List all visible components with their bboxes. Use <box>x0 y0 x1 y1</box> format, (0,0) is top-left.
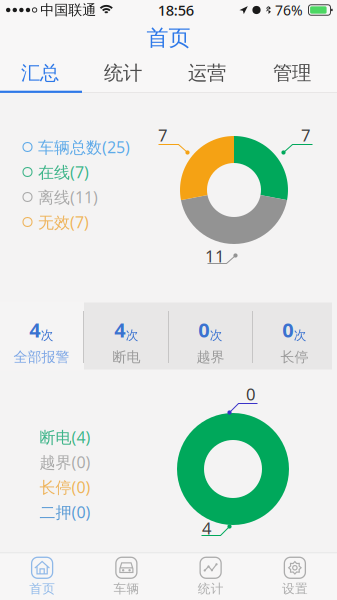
staticText: 次 <box>294 327 307 343</box>
staticText: 4 <box>202 517 212 539</box>
staticText: 0 <box>282 316 293 343</box>
button[interactable]: 4 <box>85 307 168 374</box>
staticText: 次 <box>41 327 54 343</box>
staticText: 全部报警 <box>13 348 69 366</box>
button[interactable]: 车辆 <box>84 554 168 600</box>
staticText: 11 <box>205 245 225 267</box>
staticText: 统计 <box>104 61 142 85</box>
staticText: 离线(11) <box>38 186 98 208</box>
staticText: 7 <box>158 124 168 146</box>
staticText: 0 <box>198 316 209 343</box>
staticText: 次 <box>210 327 223 343</box>
staticText: 统计 <box>198 581 224 597</box>
staticText: 设置 <box>282 581 308 597</box>
button[interactable]: 0 <box>253 307 336 374</box>
staticText: 二押(0) <box>39 501 90 523</box>
staticText: 越界 <box>196 348 224 366</box>
staticText: 车辆总数(25) <box>38 136 130 158</box>
staticText: 中国联通 <box>40 1 96 19</box>
staticText: 长停(0) <box>39 476 90 498</box>
staticText: 无效(7) <box>38 211 89 233</box>
staticText: 越界(0) <box>39 451 90 473</box>
button[interactable]: 统计 <box>168 554 253 600</box>
staticText: 4 <box>114 316 125 343</box>
staticText: 管理 <box>273 61 311 85</box>
staticText: 首页 <box>29 581 55 597</box>
button[interactable]: 设置 <box>253 554 337 600</box>
staticText: 7 <box>301 124 311 146</box>
staticText: 运营 <box>188 61 226 85</box>
staticText: 首页 <box>146 24 190 52</box>
button[interactable]: 汇总 <box>0 53 82 93</box>
staticText: 断电 <box>112 348 140 366</box>
button[interactable]: 管理 <box>250 53 334 93</box>
staticText: 4 <box>29 316 40 343</box>
staticText: 次 <box>126 327 139 343</box>
button[interactable]: 首页 <box>0 554 84 600</box>
staticText: 断电(4) <box>39 426 90 448</box>
staticText: 长停 <box>280 348 308 366</box>
staticText: 车辆 <box>113 581 139 597</box>
button[interactable]: 统计 <box>81 53 165 93</box>
staticText: 76% <box>275 0 303 20</box>
staticText: 在线(7) <box>38 161 89 183</box>
button[interactable]: 运营 <box>165 53 249 93</box>
staticText: 汇总 <box>21 61 59 85</box>
staticText: 0 <box>246 383 256 405</box>
staticText: 18:56 <box>158 0 194 20</box>
button[interactable]: 0 <box>169 307 252 374</box>
button[interactable]: 4 <box>0 307 83 374</box>
